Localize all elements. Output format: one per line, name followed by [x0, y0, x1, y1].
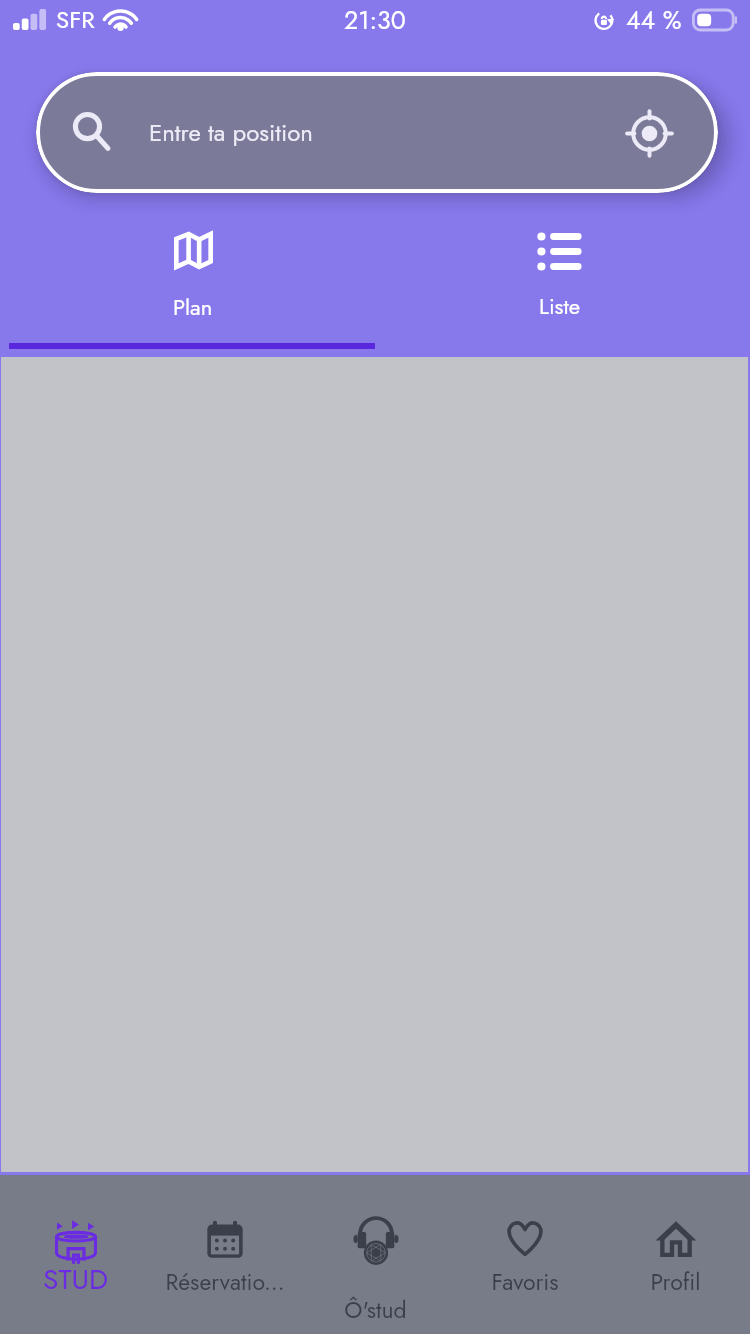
staticText: Ô'stud	[344, 1293, 407, 1326]
staticText: Favoris	[491, 1265, 559, 1298]
staticText: 21:30	[344, 2, 406, 38]
staticText: 44 %	[626, 2, 682, 38]
staticText: SFR	[56, 2, 95, 37]
button[interactable]: Entre ta position	[36, 72, 718, 193]
button[interactable]: Réservatio...	[150, 1175, 300, 1334]
button[interactable]: Ô'stud	[300, 1175, 450, 1334]
button[interactable]: Profil	[600, 1175, 750, 1334]
button[interactable]: Plan	[0, 205, 375, 357]
staticText: STUD	[43, 1259, 108, 1299]
staticText: Entre ta position	[149, 115, 313, 150]
staticText: Plan	[173, 291, 213, 323]
button[interactable]: Utiliser ma position	[626, 110, 672, 156]
staticText: Profil	[650, 1265, 701, 1298]
button[interactable]: STUD	[0, 1175, 150, 1334]
staticText: Réservatio...	[165, 1265, 285, 1298]
button[interactable]: Liste	[375, 205, 750, 357]
button[interactable]: Favoris	[450, 1175, 600, 1334]
staticText: Liste	[539, 290, 581, 322]
